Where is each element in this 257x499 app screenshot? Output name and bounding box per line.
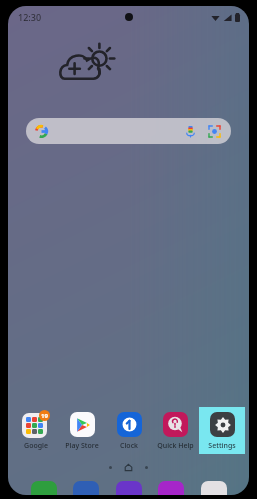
button[interactable]: Home [125, 464, 132, 471]
button[interactable] [31, 481, 57, 495]
button[interactable]: Google Lens [206, 123, 222, 139]
button[interactable]: Voice search [182, 123, 198, 139]
button[interactable]: Settings [199, 407, 245, 454]
button[interactable]: Play Store [59, 407, 105, 454]
button[interactable] [73, 481, 99, 495]
button[interactable]: Quick Help [152, 407, 198, 454]
staticText: 19 [41, 412, 48, 420]
staticText: Google [24, 441, 48, 451]
button[interactable]: Clock [106, 407, 152, 454]
staticText: Clock [120, 441, 138, 451]
staticText: 12:30 [18, 11, 42, 23]
button[interactable] [116, 481, 142, 495]
staticText: Settings [208, 441, 236, 451]
button[interactable]: Weather [56, 42, 118, 88]
staticText: Quick Help [157, 441, 194, 451]
button[interactable] [201, 481, 227, 495]
button[interactable]: 19 [13, 407, 59, 454]
button[interactable] [158, 481, 184, 495]
button[interactable]: Voice search [26, 118, 231, 144]
staticText: Play Store [65, 441, 99, 451]
